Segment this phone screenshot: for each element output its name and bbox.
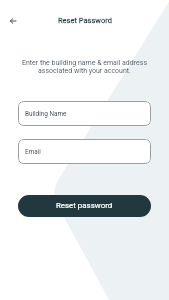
- staticText: Email: [25, 148, 41, 156]
- button[interactable]: Reset password: [18, 195, 151, 217]
- button[interactable]: Back: [5, 13, 21, 29]
- button[interactable]: Email: [18, 139, 151, 164]
- staticText: Reset password: [56, 201, 113, 210]
- staticText: Reset Password: [58, 16, 112, 25]
- staticText: Enter the building name & email address …: [8, 59, 161, 75]
- button[interactable]: Building Name: [18, 101, 151, 126]
- staticText: Building Name: [25, 110, 67, 118]
